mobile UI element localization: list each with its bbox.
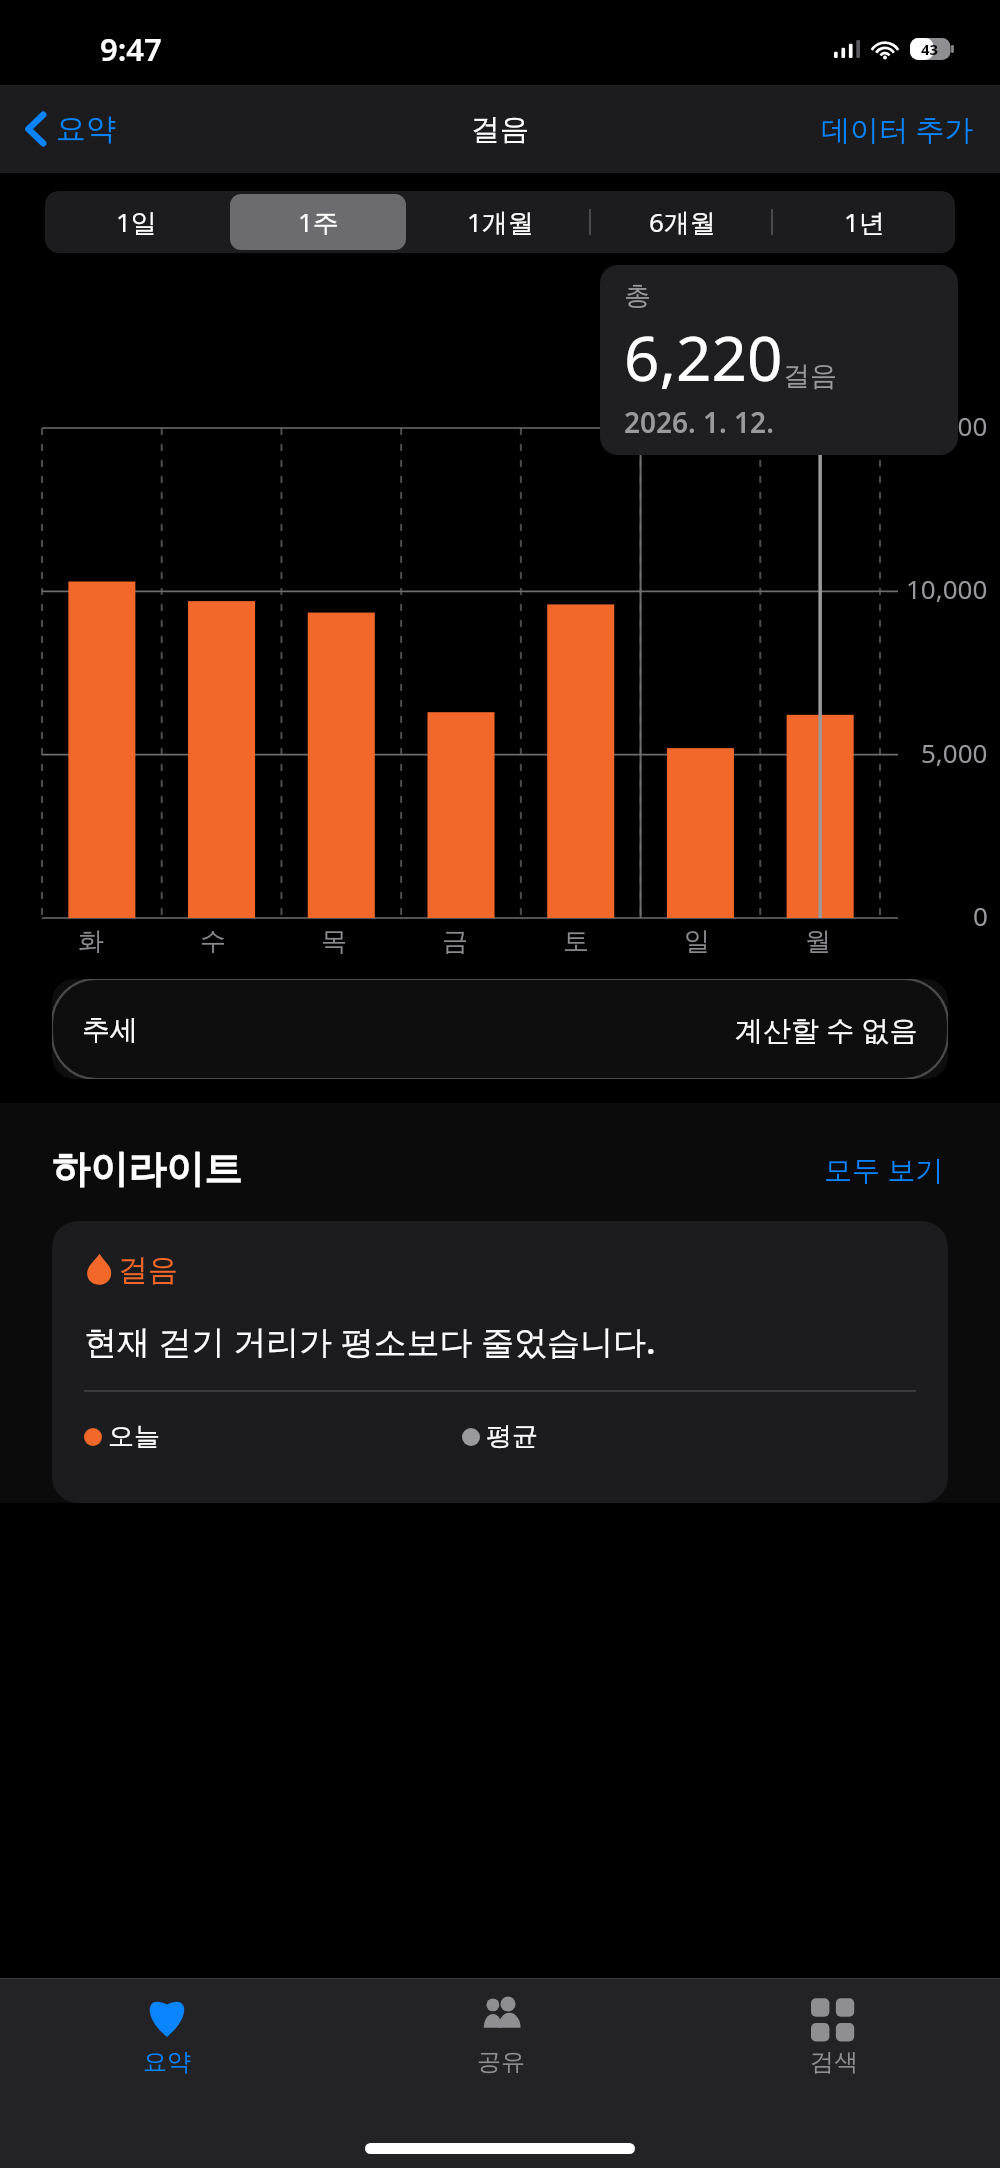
staticText: 현재 걷기 거리가 평소보다 줄었습니다. bbox=[84, 1319, 656, 1364]
staticText: 목 bbox=[321, 925, 347, 958]
staticText: 금 bbox=[442, 925, 468, 958]
staticText: 하이라이트 bbox=[52, 1145, 820, 1193]
staticText: 걸음 bbox=[783, 359, 837, 393]
button[interactable]: 1주 bbox=[230, 194, 406, 250]
staticText: 10,000 bbox=[906, 571, 988, 606]
staticText: 1년 bbox=[844, 204, 885, 240]
button[interactable]: 6개월 bbox=[594, 194, 770, 250]
staticText: 5,000 bbox=[921, 735, 988, 770]
staticText: 오늘 bbox=[108, 1420, 160, 1453]
staticText: 1일 bbox=[116, 204, 157, 240]
staticText: 월 bbox=[805, 925, 831, 958]
staticText: 1개월 bbox=[467, 204, 534, 240]
staticText: 수 bbox=[200, 925, 226, 958]
staticText: 평균 bbox=[486, 1420, 538, 1453]
staticText: 걸음 bbox=[471, 111, 529, 148]
staticText: 데이터 추가 bbox=[821, 109, 974, 149]
staticText: 토 bbox=[563, 925, 589, 958]
staticText: 총 bbox=[624, 279, 651, 313]
button[interactable]: 검색 bbox=[667, 1979, 1000, 2104]
staticText: 15,000 bbox=[906, 408, 988, 443]
staticText: 1주 bbox=[298, 204, 339, 240]
button[interactable]: 1개월 bbox=[412, 194, 588, 250]
staticText: 일 bbox=[684, 925, 710, 958]
button[interactable]: 1일 bbox=[48, 194, 224, 250]
staticText: 9:47 bbox=[100, 28, 162, 70]
staticText: 검색 bbox=[810, 2047, 858, 2077]
button[interactable]: 요약 bbox=[0, 1979, 334, 2104]
button[interactable]: 모두 보기 bbox=[820, 1146, 948, 1192]
staticText: 6,220 bbox=[624, 315, 783, 399]
staticText: 걸음 bbox=[118, 1251, 178, 1289]
staticText: 공유 bbox=[477, 2047, 525, 2077]
staticText: 요약 bbox=[143, 2047, 191, 2077]
button[interactable]: 요약 bbox=[20, 102, 122, 156]
staticText: 추세 bbox=[82, 1012, 138, 1047]
button[interactable]: 1년 bbox=[776, 194, 952, 250]
staticText: 계산할 수 없음 bbox=[735, 1010, 918, 1048]
button[interactable]: 걸음 bbox=[52, 1221, 948, 1503]
staticText: 0 bbox=[973, 898, 988, 933]
staticText: 요약 bbox=[56, 110, 116, 148]
button[interactable]: 추세 bbox=[52, 979, 948, 1079]
staticText: 화 bbox=[78, 925, 104, 958]
staticText: 2026. 1. 12. bbox=[624, 403, 774, 441]
staticText: 6개월 bbox=[649, 204, 716, 240]
staticText: 모두 보기 bbox=[824, 1150, 944, 1188]
staticText: 43 bbox=[921, 39, 939, 59]
button[interactable]: 데이터 추가 bbox=[817, 101, 978, 157]
button[interactable]: 공유 bbox=[334, 1979, 667, 2104]
